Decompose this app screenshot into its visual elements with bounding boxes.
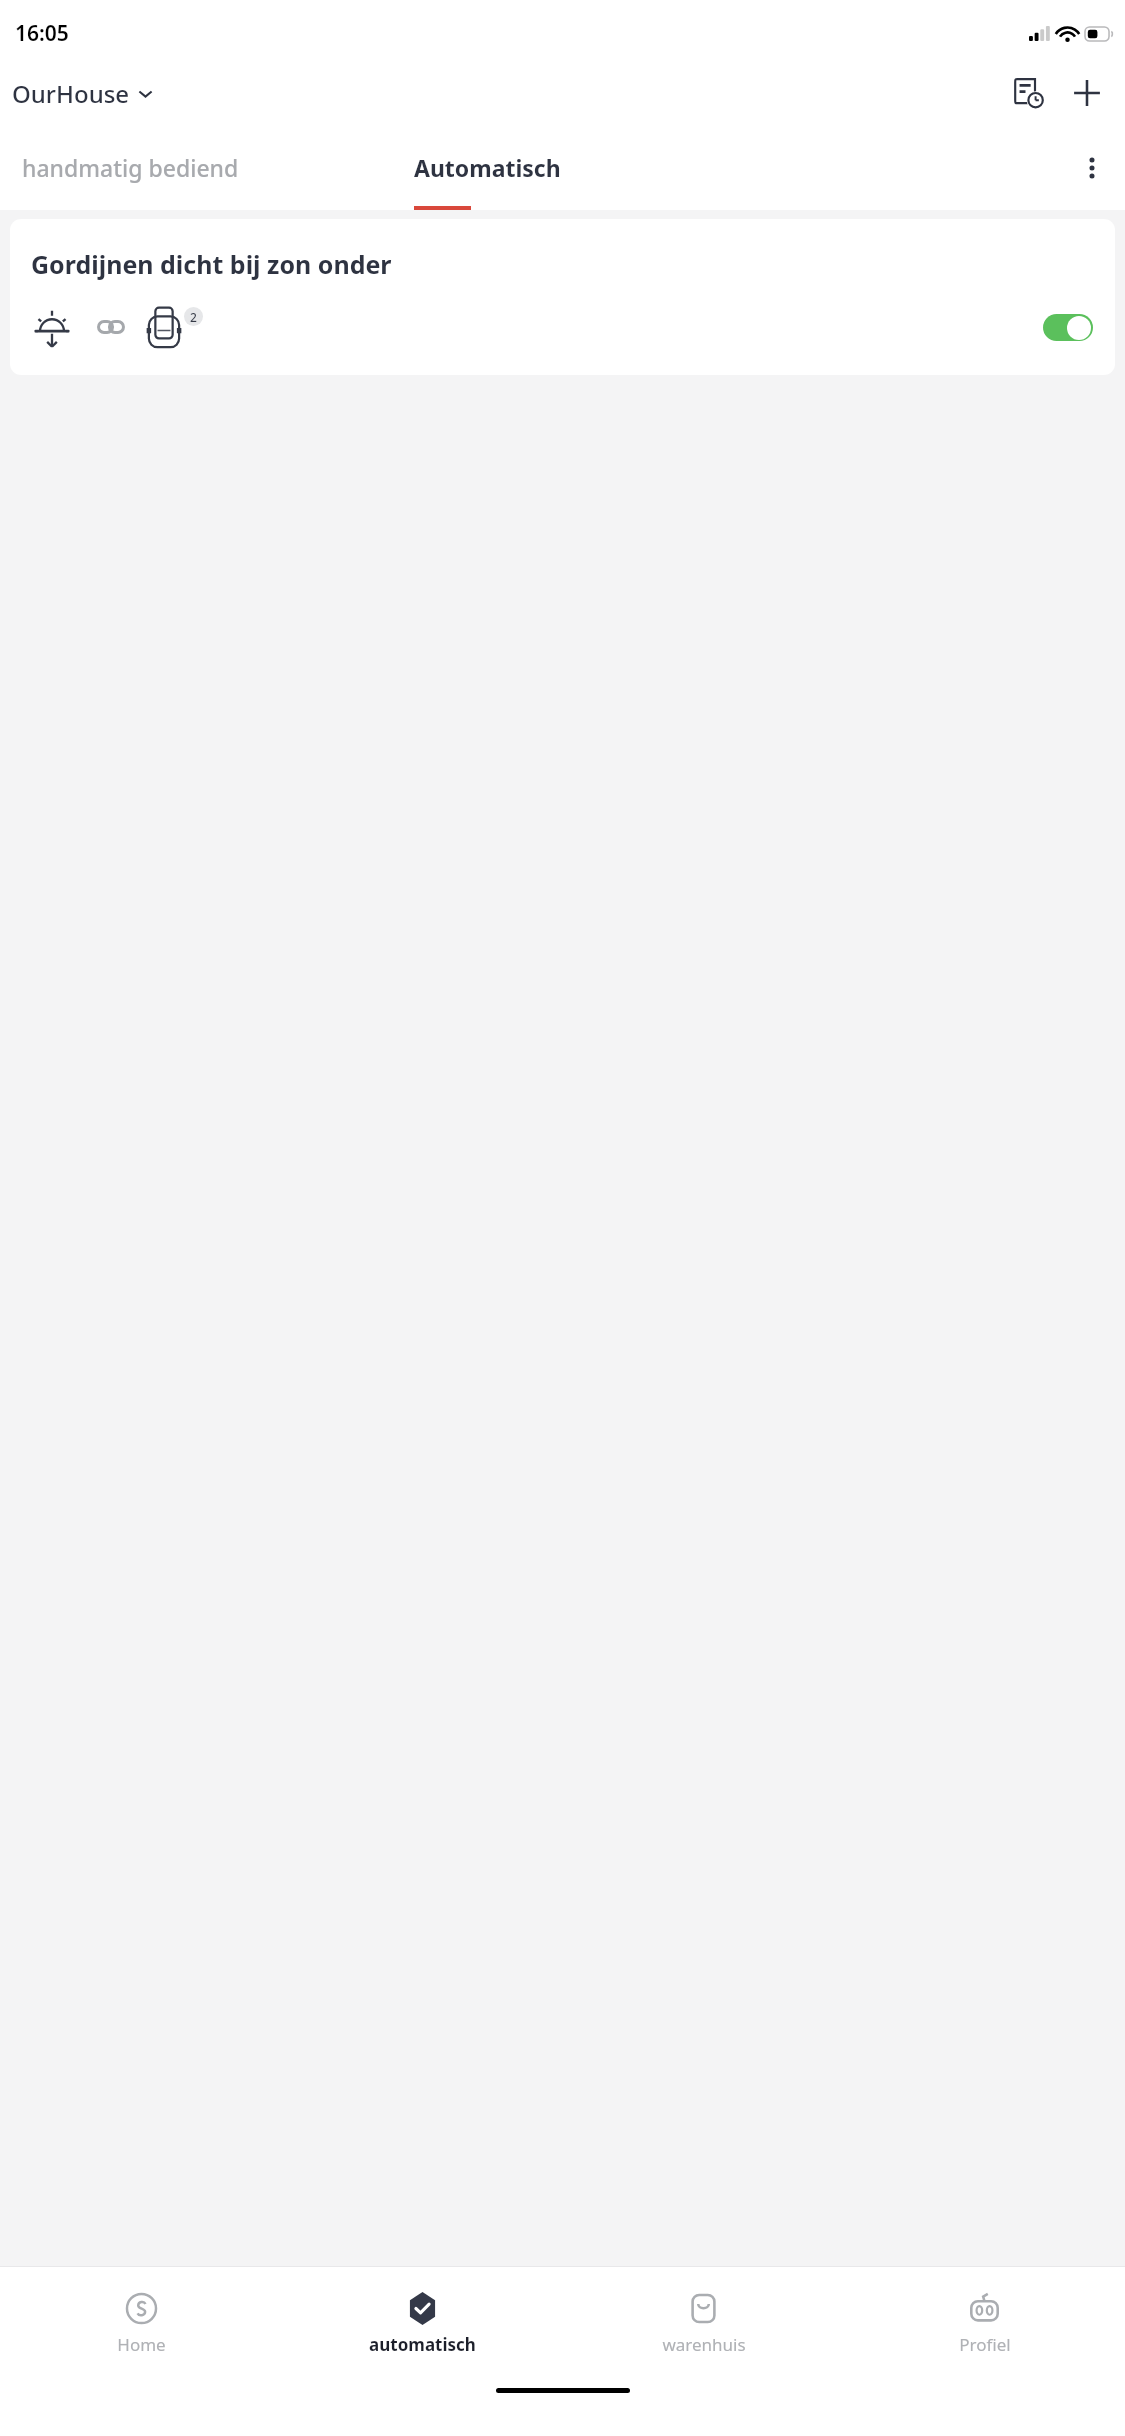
staticText: Gordijnen dicht bij zon onder: [31, 247, 392, 281]
staticText: 2: [190, 309, 197, 325]
staticText: warenhuis: [662, 2333, 746, 2356]
button[interactable]: Toggle automation: [1043, 314, 1093, 341]
button[interactable]: warenhuis: [563, 2267, 844, 2380]
staticText: automatisch: [369, 2333, 476, 2356]
button[interactable]: automatisch: [282, 2267, 563, 2380]
button[interactable]: Home: [0, 2267, 282, 2380]
button[interactable]: Gordijnen dicht bij zon onder: [10, 219, 1115, 375]
staticText: Home: [117, 2333, 166, 2356]
button[interactable]: More options: [1065, 141, 1119, 195]
staticText: Automatisch: [414, 152, 561, 183]
button[interactable]: Scenes history: [1005, 69, 1053, 117]
button[interactable]: handmatig bediend: [6, 125, 255, 210]
button[interactable]: Add: [1063, 69, 1111, 117]
staticText: 16:05: [15, 19, 69, 48]
button[interactable]: Profiel: [844, 2267, 1125, 2380]
button[interactable]: Automatisch: [398, 125, 577, 210]
staticText: OurHouse: [12, 77, 130, 110]
staticText: Profiel: [959, 2333, 1011, 2356]
staticText: handmatig bediend: [22, 152, 239, 183]
button[interactable]: OurHouse: [10, 73, 156, 114]
